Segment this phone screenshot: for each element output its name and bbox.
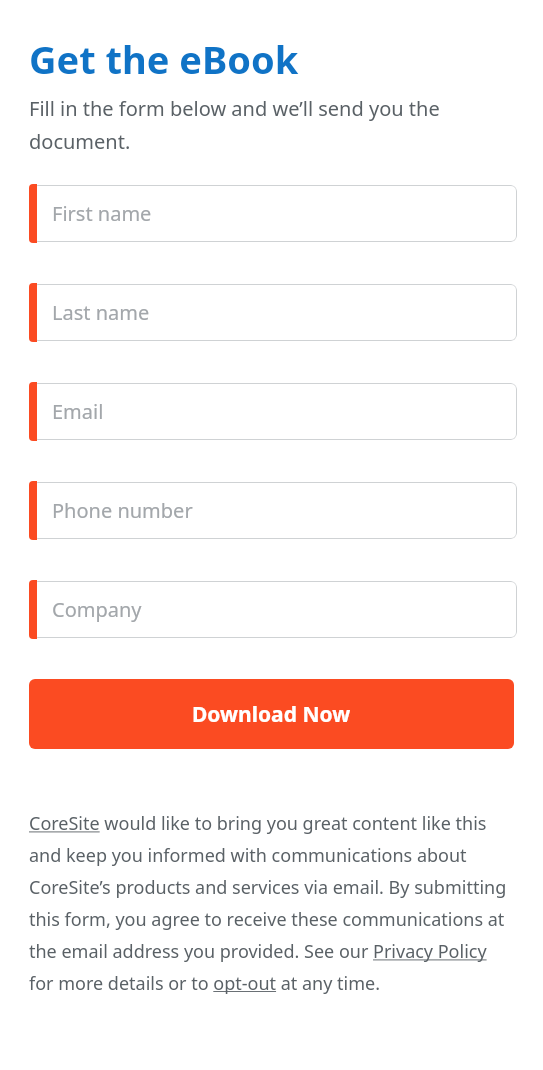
- button[interactable]: Email: [29, 382, 514, 441]
- button[interactable]: Last name: [29, 283, 514, 342]
- button[interactable]: First name: [29, 184, 514, 243]
- staticText: Last name: [52, 299, 150, 326]
- button[interactable]: Download Now: [29, 679, 514, 749]
- staticText: Email: [52, 398, 104, 425]
- staticText: Phone number: [52, 497, 193, 524]
- staticText: Get the eBook: [29, 33, 299, 85]
- button[interactable]: Company: [29, 580, 514, 639]
- staticText: Company: [52, 596, 142, 623]
- staticText: CoreSite would like to bring you great c…: [29, 811, 514, 995]
- staticText: Download Now: [192, 700, 351, 729]
- staticText: Fill in the form below and we’ll send yo…: [29, 95, 514, 155]
- button[interactable]: Phone number: [29, 481, 514, 540]
- staticText: First name: [52, 200, 152, 227]
